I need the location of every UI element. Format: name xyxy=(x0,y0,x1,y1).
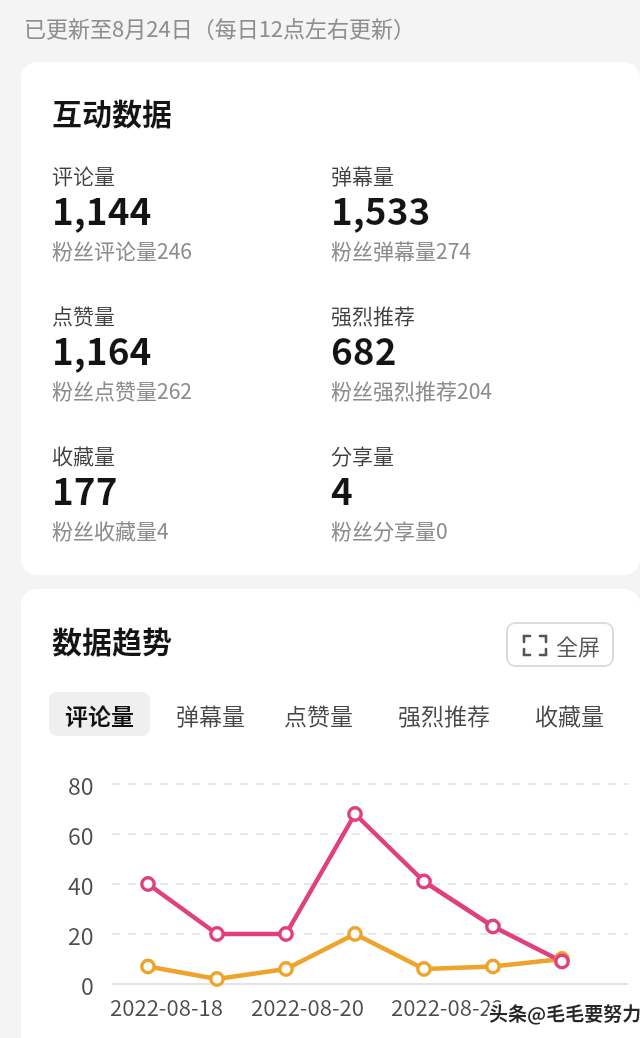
staticText: 点赞量 xyxy=(52,300,115,330)
staticText: 头条@毛毛要努力 xyxy=(487,998,640,1026)
staticText: 头条@毛毛要努力 xyxy=(491,997,640,1025)
staticText: 强烈推荐 xyxy=(398,698,490,731)
staticText: 头条@毛毛要努力 xyxy=(490,1001,640,1029)
button[interactable]: 收藏量 xyxy=(514,691,624,737)
staticText: 头条@毛毛要努力 xyxy=(488,998,640,1026)
button[interactable]: 点赞量 xyxy=(263,691,373,737)
staticText: 头条@毛毛要努力 xyxy=(490,997,640,1025)
staticText: 头条@毛毛要努力 xyxy=(489,997,640,1025)
staticText: 40 xyxy=(68,868,94,901)
staticText: 收藏量 xyxy=(52,440,115,470)
staticText: 粉丝分享量0 xyxy=(331,515,448,545)
staticText: 头条@毛毛要努力 xyxy=(491,998,640,1026)
staticText: 头条@毛毛要努力 xyxy=(487,1000,640,1028)
staticText: 评论量 xyxy=(65,698,134,731)
button[interactable] xyxy=(506,622,614,667)
staticText: 头条@毛毛要努力 xyxy=(491,999,640,1027)
staticText: 收藏量 xyxy=(535,698,604,731)
staticText: 数据趋势 xyxy=(52,618,172,661)
staticText: 20 xyxy=(68,918,94,951)
staticText: 评论量 xyxy=(52,160,115,190)
staticText: 头条@毛毛要努力 xyxy=(489,998,640,1026)
staticText: 头条@毛毛要努力 xyxy=(487,997,640,1025)
button[interactable]: 强烈推荐 xyxy=(379,691,509,737)
staticText: 头条@毛毛要努力 xyxy=(489,999,640,1027)
staticText: 头条@毛毛要努力 xyxy=(488,999,640,1027)
staticText: 177 xyxy=(52,462,118,516)
staticText: 全屏 xyxy=(556,629,601,661)
staticText: 头条@毛毛要努力 xyxy=(488,1001,640,1029)
staticText: 头条@毛毛要努力 xyxy=(489,1001,640,1029)
staticText: 头条@毛毛要努力 xyxy=(489,1000,640,1028)
staticText: 头条@毛毛要努力 xyxy=(488,1000,640,1028)
staticText: 头条@毛毛要努力 xyxy=(490,999,640,1027)
staticText: 粉丝弹幕量274 xyxy=(331,235,471,265)
staticText: 0 xyxy=(81,968,94,1001)
staticText: 1,144 xyxy=(52,182,152,236)
staticText: 点赞量 xyxy=(284,698,353,731)
staticText: 粉丝收藏量4 xyxy=(52,515,169,545)
staticText: 60 xyxy=(68,818,94,851)
staticText: 分享量 xyxy=(331,440,394,470)
staticText: 2022-08-20 xyxy=(251,990,364,1022)
staticText: 弹幕量 xyxy=(331,160,394,190)
staticText: 头条@毛毛要努力 xyxy=(490,1000,640,1028)
staticText: 头条@毛毛要努力 xyxy=(488,997,640,1025)
staticText: 头条@毛毛要努力 xyxy=(491,1000,640,1028)
staticText: 已更新至8月24日（每日12点左右更新） xyxy=(24,11,416,43)
staticText: 弹幕量 xyxy=(176,698,245,731)
staticText: 4 xyxy=(331,462,353,516)
staticText: 头条@毛毛要努力 xyxy=(487,999,640,1027)
staticText: 2022-08-22 xyxy=(391,990,504,1022)
staticText: 1,164 xyxy=(52,322,152,376)
staticText: 强烈推荐 xyxy=(331,300,415,330)
staticText: 互动数据 xyxy=(52,90,172,133)
staticText: 头条@毛毛要努力 xyxy=(490,998,640,1026)
staticText: 1,533 xyxy=(331,182,431,236)
staticText: 头条@毛毛要努力 xyxy=(487,1001,640,1029)
staticText: 粉丝强烈推荐204 xyxy=(331,375,492,405)
staticText: 2022-08-18 xyxy=(110,990,223,1022)
staticText: 粉丝点赞量262 xyxy=(52,375,192,405)
staticText: 粉丝评论量246 xyxy=(52,235,192,265)
staticText: 80 xyxy=(68,768,94,801)
button[interactable]: 弹幕量 xyxy=(155,691,265,737)
button[interactable]: 评论量 xyxy=(49,692,150,736)
staticText: 682 xyxy=(331,322,397,376)
staticText: 头条@毛毛要努力 xyxy=(491,1001,640,1029)
